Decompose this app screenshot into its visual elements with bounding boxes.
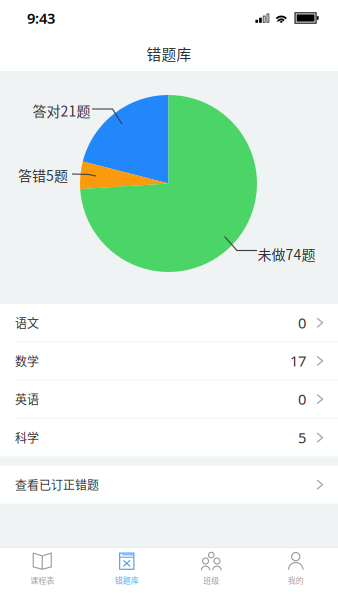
staticText: 数学: [15, 352, 39, 370]
staticText: 未做74题: [257, 244, 315, 264]
button[interactable]: 班级: [169, 548, 253, 600]
button[interactable]: 课程表: [0, 548, 84, 600]
staticText: 课程表: [30, 574, 54, 586]
staticText: 答错5题: [18, 165, 68, 185]
staticText: 查看已订正错题: [15, 476, 99, 493]
button[interactable]: 英语: [0, 380, 338, 419]
staticText: 错题库: [115, 574, 139, 586]
staticText: 我的: [288, 574, 304, 586]
staticText: 班级: [203, 574, 219, 586]
button[interactable]: 我的: [253, 548, 338, 600]
staticText: 错题库: [146, 43, 191, 64]
staticText: 5: [298, 428, 306, 447]
staticText: 9:43: [27, 8, 55, 28]
staticText: 答对21题: [32, 100, 90, 121]
staticText: 语文: [15, 314, 39, 331]
staticText: 英语: [15, 390, 39, 408]
staticText: 0: [298, 313, 306, 332]
button[interactable]: 查看已订正错题: [0, 466, 338, 504]
staticText: 17: [290, 351, 306, 371]
staticText: 科学: [15, 429, 39, 446]
button[interactable]: 科学: [0, 419, 338, 457]
button[interactable]: 数学: [0, 342, 338, 380]
button[interactable]: 语文: [0, 304, 338, 342]
staticText: 0: [298, 389, 306, 409]
button[interactable]: 错题库: [84, 548, 169, 600]
